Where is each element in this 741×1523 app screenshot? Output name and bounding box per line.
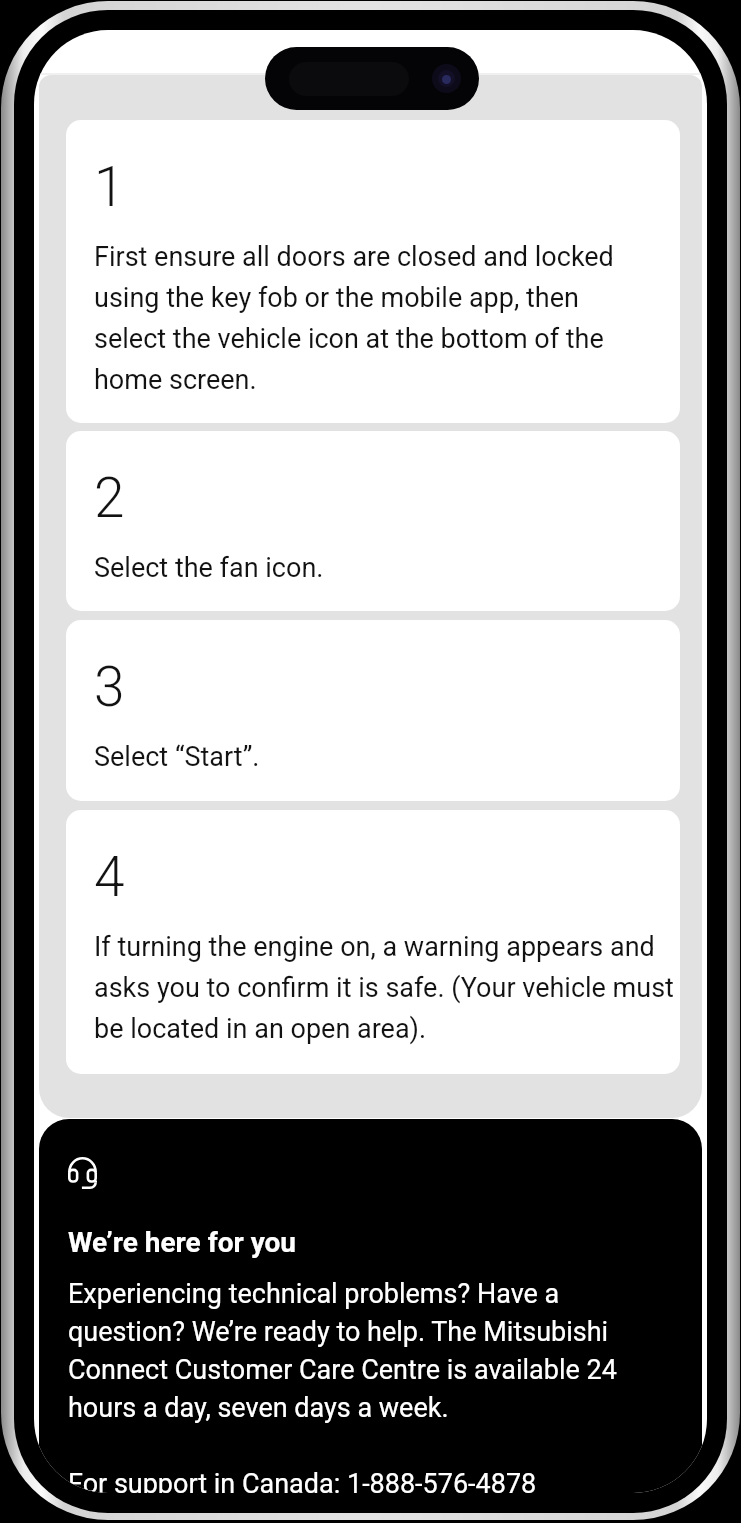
button[interactable]: Customer support: [39, 1119, 702, 1493]
staticText: First ensure all doors are closed and lo…: [94, 234, 614, 398]
staticText: We’re here for you: [68, 1224, 297, 1260]
staticText: For support in Canada: 1-888-576-4878: [68, 1463, 537, 1493]
button[interactable]: 2: [66, 431, 680, 611]
button[interactable]: 4: [66, 810, 680, 1074]
staticText: Experiencing technical problems? Have a …: [68, 1273, 617, 1425]
staticText: If turning the engine on, a warning appe…: [94, 924, 674, 1047]
staticText: 2: [94, 471, 125, 529]
button[interactable]: 1: [66, 120, 680, 423]
staticText: Select the fan icon.: [94, 545, 324, 586]
staticText: 1: [94, 160, 125, 218]
other: Customer support: [68, 1157, 97, 1189]
button[interactable]: 3: [66, 620, 680, 801]
staticText: 4: [94, 850, 125, 908]
staticText: Select “Start”.: [94, 734, 260, 775]
staticText: 3: [94, 660, 125, 718]
